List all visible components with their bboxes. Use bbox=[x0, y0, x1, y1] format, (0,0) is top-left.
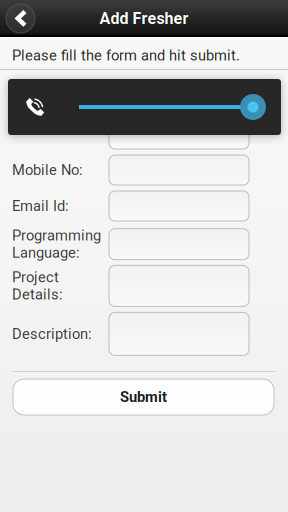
staticText: Language: bbox=[12, 244, 80, 261]
staticText: Details: bbox=[12, 286, 63, 303]
staticText: Add Fresher bbox=[99, 9, 188, 28]
staticText: Programming bbox=[12, 227, 101, 244]
staticText: Email Id: bbox=[12, 197, 69, 215]
staticText: Description: bbox=[12, 325, 92, 342]
button[interactable]: Back bbox=[0, 0, 41, 37]
staticText: Project bbox=[12, 269, 59, 286]
button[interactable]: Submit bbox=[13, 379, 274, 415]
staticText: Submit bbox=[120, 388, 167, 406]
staticText: Please fill the form and hit submit. bbox=[12, 47, 240, 64]
staticText: Mobile No: bbox=[12, 161, 83, 179]
